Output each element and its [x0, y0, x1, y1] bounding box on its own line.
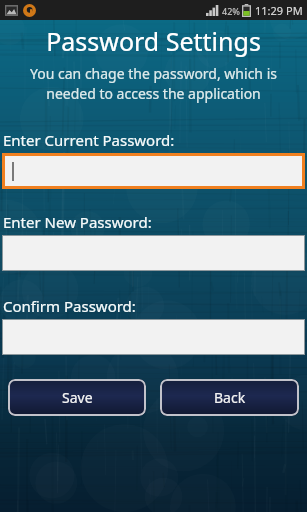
staticText: Confirm Password:	[3, 296, 307, 316]
staticText: You can chage the password, which is nee…	[3, 64, 304, 103]
staticText: 42%	[222, 5, 240, 17]
button[interactable]: Save	[8, 379, 146, 416]
staticText: Password Settings	[0, 24, 307, 58]
staticText: Enter Current Password:	[3, 130, 307, 150]
staticText: Enter New Password:	[3, 212, 307, 232]
staticText: Back	[214, 388, 246, 407]
button[interactable]	[5, 156, 302, 186]
button[interactable]: Back	[160, 379, 299, 416]
staticText: 11:29 PM	[255, 3, 303, 18]
staticText: Save	[62, 388, 93, 407]
